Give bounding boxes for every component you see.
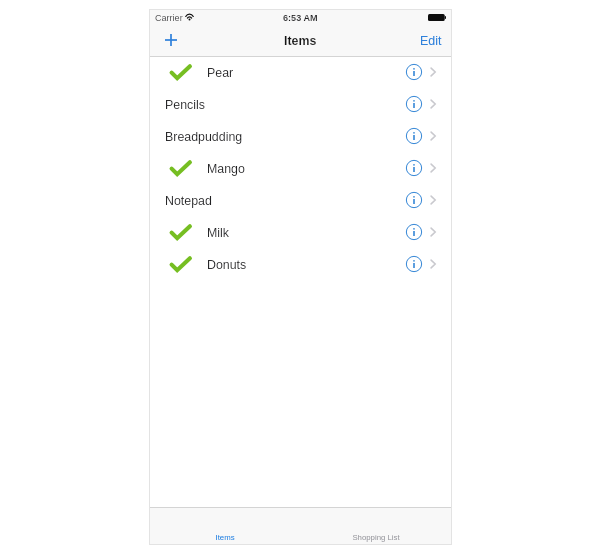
button[interactable]: Donuts	[150, 249, 451, 281]
staticText: Pear	[207, 66, 234, 80]
staticText: Items	[215, 533, 235, 542]
button[interactable]: Details for Pear	[404, 62, 424, 82]
staticText: Donuts	[207, 258, 247, 272]
button[interactable]: Breadpudding	[150, 121, 451, 153]
button[interactable]: Items	[150, 508, 300, 544]
button[interactable]: Pear	[150, 57, 451, 89]
staticText: Milk	[207, 226, 230, 240]
staticText: Notepad	[165, 194, 212, 208]
button[interactable]: Mango	[150, 153, 451, 185]
button[interactable]: Details for Notepad	[404, 190, 424, 210]
button[interactable]: Details for Breadpudding	[404, 126, 424, 146]
staticText: Items	[284, 34, 317, 48]
button[interactable]: Pencils	[150, 89, 451, 121]
staticText: 6:53 AM	[283, 13, 318, 23]
button[interactable]: Details for Mango	[404, 158, 424, 178]
staticText: Edit	[420, 34, 442, 48]
button[interactable]: Shopping List	[300, 508, 451, 544]
staticText: Pencils	[165, 98, 205, 112]
staticText: Shopping List	[352, 533, 400, 542]
staticText: Carrier	[155, 13, 183, 23]
staticText: Mango	[207, 162, 245, 176]
button[interactable]: Details for Donuts	[404, 254, 424, 274]
button[interactable]: Notepad	[150, 185, 451, 217]
button[interactable]: Details for Pencils	[404, 94, 424, 114]
button[interactable]: Details for Milk	[404, 222, 424, 242]
button[interactable]: Milk	[150, 217, 451, 249]
button[interactable]: Edit	[414, 29, 448, 53]
button[interactable]: Add item	[159, 28, 182, 51]
staticText: Breadpudding	[165, 130, 243, 144]
